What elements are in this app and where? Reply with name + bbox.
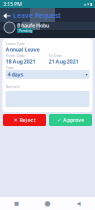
staticText: Pending — [18, 28, 31, 33]
staticText: Leave Type — [5, 41, 24, 46]
staticText: 4 days — [7, 71, 23, 78]
staticText: 21 Aug 2021 — [48, 58, 78, 65]
staticText: ✓ Approve — [57, 116, 84, 124]
staticText: 3:15 PM — [3, 0, 22, 8]
staticText: ■ — [14, 200, 19, 207]
staticText: Bhaufe Hobu — [17, 22, 49, 29]
button[interactable]: Home — [32, 197, 63, 210]
staticText: Annual Leave — [5, 46, 39, 53]
staticText: Remark — [5, 84, 19, 89]
staticText: ⬤ — [44, 200, 50, 207]
button[interactable]: Recent apps — [1, 197, 32, 210]
staticText: Leave Request — [13, 11, 61, 20]
button[interactable]: Back — [2, 11, 13, 20]
button[interactable]: ✕ Reject — [3, 114, 46, 126]
staticText: To Date — [48, 53, 61, 58]
button[interactable]: ✓ Approve — [49, 114, 92, 126]
staticText: ▾ — [85, 72, 87, 77]
staticText: Total — [5, 65, 13, 70]
staticText: From Date — [5, 53, 24, 58]
staticText: 18 Aug 2021 — [5, 58, 35, 65]
button[interactable]: 4 days — [5, 70, 89, 79]
staticText: ▴ ▾ ▮ — [84, 2, 92, 6]
button[interactable]: Back — [63, 197, 94, 210]
staticText: ✕ Reject — [13, 116, 35, 124]
staticText: ◀ — [76, 200, 80, 207]
